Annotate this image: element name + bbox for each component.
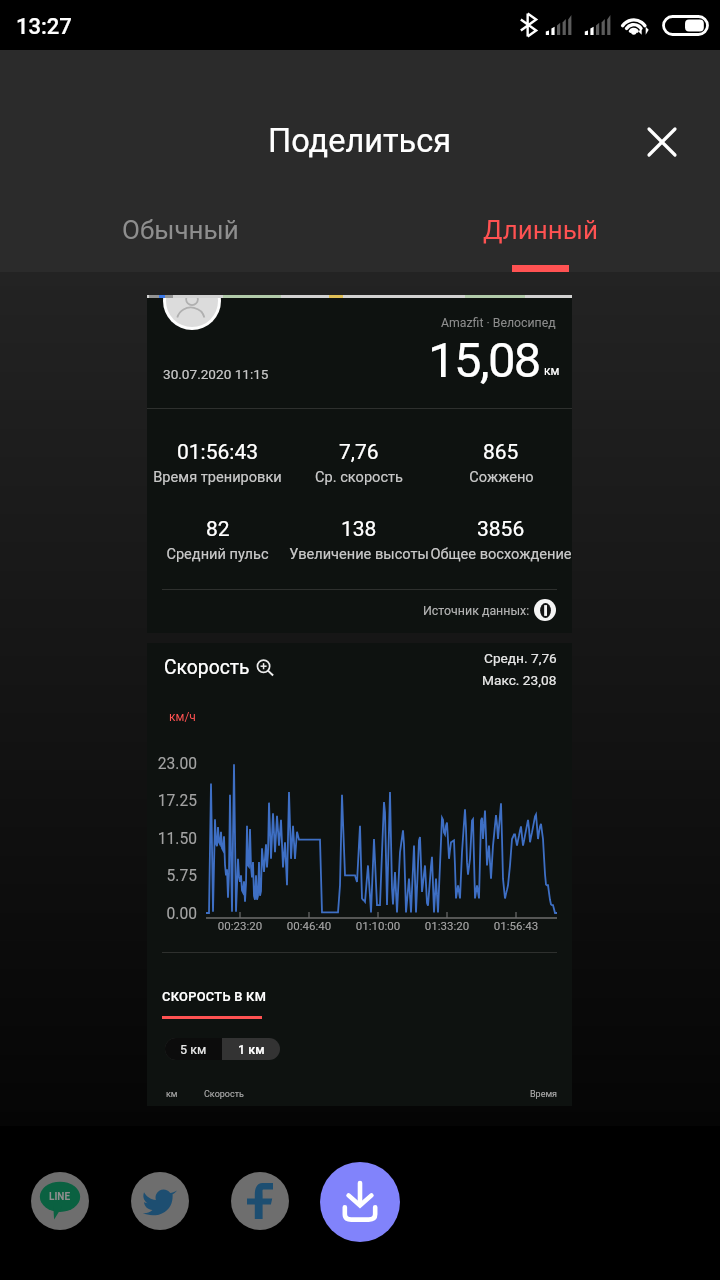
button[interactable]: Длинный	[360, 210, 720, 272]
staticText: Скорость	[164, 656, 250, 679]
staticText: Время	[530, 1089, 558, 1100]
staticText: 7,76	[339, 440, 379, 465]
button[interactable]: Share to LINE	[31, 1172, 89, 1230]
staticText: 138	[341, 517, 377, 542]
button[interactable]: Обычный	[0, 210, 360, 272]
staticText: Увеличение высоты	[289, 545, 429, 562]
staticText: 13:27	[16, 14, 72, 40]
staticText: Средн. 7,76	[484, 650, 557, 666]
button[interactable]: Close	[634, 114, 690, 170]
staticText: 82	[206, 517, 230, 542]
staticText: 01:10:00	[343, 919, 413, 932]
staticText: Макс. 23,08	[482, 672, 557, 688]
staticText: 11.50	[152, 830, 197, 848]
staticText: Скорость	[204, 1089, 244, 1100]
staticText: Поделиться	[268, 122, 452, 160]
staticText: 5 км	[180, 1042, 207, 1057]
staticText: 23.00	[152, 755, 197, 773]
staticText: LINE	[49, 1191, 71, 1203]
staticText: 01:56:43	[481, 919, 551, 932]
staticText: Ср. скорость	[315, 468, 403, 485]
staticText: км/ч	[169, 710, 196, 724]
button[interactable]: Share to Twitter	[131, 1172, 189, 1230]
staticText: 0.00	[152, 905, 197, 923]
button[interactable]: 5 км	[165, 1038, 222, 1060]
staticText: 3856	[477, 517, 525, 542]
staticText: 17.25	[152, 792, 197, 810]
staticText: Время тренировки	[153, 468, 282, 485]
staticText: Общее восхождение	[430, 545, 572, 562]
staticText: Сожжено	[469, 468, 534, 485]
staticText: 30.07.2020 11:15	[163, 366, 269, 382]
staticText: Amazfit · Велосипед	[441, 316, 556, 330]
staticText: 1 км	[238, 1042, 265, 1057]
staticText: Обычный	[122, 215, 239, 245]
staticText: Средний пульс	[166, 545, 269, 562]
staticText: 00:46:40	[274, 919, 344, 932]
staticText: 15,08	[428, 332, 540, 389]
staticText: СКОРОСТЬ В КМ	[162, 989, 267, 1004]
staticText: км	[544, 364, 560, 378]
staticText: 00:23:20	[205, 919, 275, 932]
staticText: 865	[483, 440, 519, 465]
button[interactable]: Download	[320, 1162, 400, 1242]
staticText: 5.75	[152, 867, 197, 885]
staticText: 01:56:43	[177, 440, 258, 465]
button[interactable]: 1 км	[222, 1038, 280, 1060]
staticText: 01:33:20	[412, 919, 482, 932]
staticText: Длинный	[483, 215, 598, 245]
staticText: Источник данных:	[423, 603, 530, 618]
button[interactable]: Share to Facebook	[231, 1172, 289, 1230]
staticText: км	[166, 1089, 178, 1100]
